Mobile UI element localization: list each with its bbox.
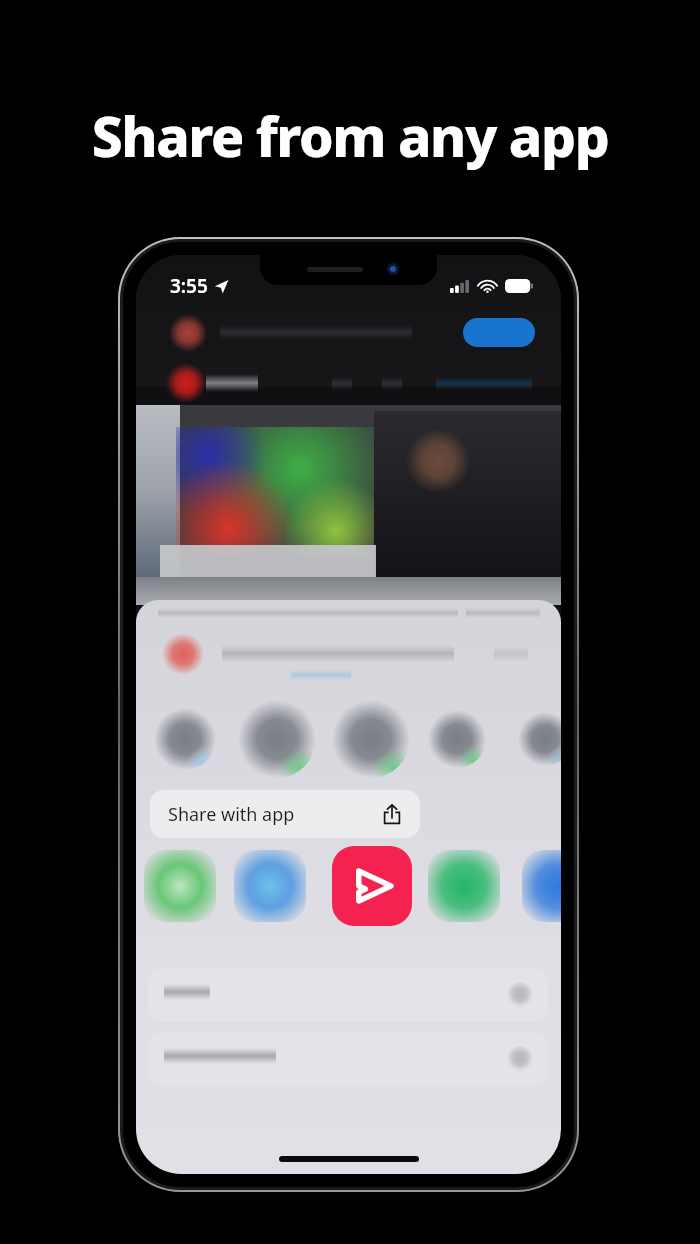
- button[interactable]: Share with app: [150, 790, 420, 838]
- button[interactable]: [463, 318, 535, 347]
- staticText: Share from any app: [0, 98, 700, 173]
- button[interactable]: Share to app: [332, 846, 412, 926]
- button[interactable]: [148, 1032, 548, 1086]
- button[interactable]: [148, 968, 548, 1022]
- staticText: Share with app: [168, 802, 295, 827]
- staticText: 3:55: [170, 273, 208, 299]
